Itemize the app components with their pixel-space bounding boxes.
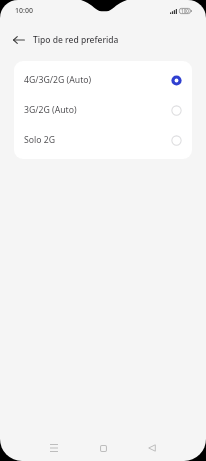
staticText: 10:00 bbox=[15, 6, 33, 16]
button[interactable]: Back bbox=[139, 435, 165, 461]
staticText: 4G/3G/2G (Auto) bbox=[24, 74, 92, 86]
staticText: Tipo de red preferida bbox=[33, 34, 119, 46]
button[interactable]: Home bbox=[90, 435, 116, 461]
button[interactable]: 4G/3G/2G (Auto) bbox=[14, 65, 192, 95]
staticText: 3G/2G (Auto) bbox=[24, 104, 77, 116]
button[interactable]: Solo 2G bbox=[14, 125, 192, 155]
staticText: 100 bbox=[181, 8, 189, 14]
button[interactable]: Recent apps bbox=[41, 435, 67, 461]
button[interactable]: 3G/2G (Auto) bbox=[14, 95, 192, 125]
staticText: Solo 2G bbox=[24, 134, 56, 146]
button[interactable]: Back bbox=[7, 28, 31, 52]
